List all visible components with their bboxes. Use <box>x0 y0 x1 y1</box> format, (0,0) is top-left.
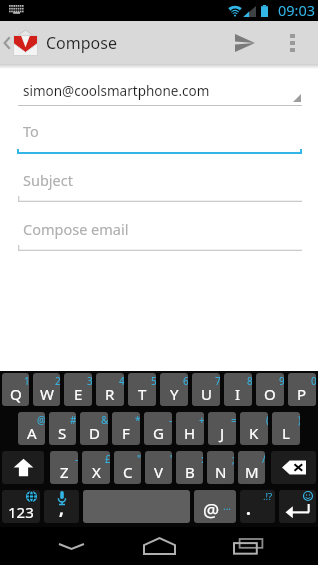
staticText: D <box>89 423 100 443</box>
staticText: L <box>282 423 290 443</box>
staticText: , <box>59 497 64 520</box>
staticText: M <box>245 462 259 482</box>
button[interactable]: ( <box>240 412 268 445</box>
staticText: 9 <box>279 374 284 388</box>
button[interactable]: - <box>144 412 172 445</box>
staticText: G <box>153 423 164 443</box>
staticText: " <box>137 452 141 466</box>
button[interactable]: £ <box>82 451 110 484</box>
button[interactable]: 8 <box>224 373 252 406</box>
staticText: Subject <box>23 170 73 190</box>
staticText: C <box>123 462 133 482</box>
button[interactable]: & <box>80 412 108 445</box>
button[interactable]: @ <box>194 490 236 523</box>
button[interactable]: 123 <box>2 490 40 523</box>
button[interactable]: Home <box>128 527 191 565</box>
button[interactable]: , <box>44 490 79 523</box>
staticText: @ <box>203 498 220 523</box>
staticText: K <box>249 423 259 443</box>
staticText: J <box>220 423 225 443</box>
staticText: = <box>231 413 236 427</box>
staticText: : <box>201 452 203 466</box>
staticText: Compose email <box>23 219 129 239</box>
button[interactable]: Navigate up <box>0 21 117 64</box>
staticText: O <box>264 384 276 404</box>
staticText: & <box>101 413 108 427</box>
staticText: E <box>74 384 83 404</box>
staticText: @ <box>37 413 45 427</box>
button[interactable]: + <box>176 412 204 445</box>
button[interactable]: Hide keyboard <box>40 527 103 565</box>
button[interactable]: : <box>176 451 203 484</box>
button[interactable]: 2 <box>33 373 60 406</box>
staticText: 09:03 <box>278 0 316 20</box>
button[interactable]: 1 <box>2 373 29 406</box>
button[interactable]: 0 <box>288 373 316 406</box>
button[interactable]: Enter <box>279 490 316 523</box>
staticText: ' <box>170 452 172 466</box>
button[interactable]: Recent apps <box>216 527 279 565</box>
staticText: R <box>105 384 115 404</box>
staticText: ... <box>223 499 232 513</box>
button[interactable]: - <box>50 451 78 484</box>
staticText: Q <box>10 384 22 404</box>
button[interactable]: ) <box>272 412 300 445</box>
staticText: 8 <box>247 374 252 388</box>
staticText: A <box>27 423 37 443</box>
staticText: - <box>169 413 172 427</box>
staticText: 2 <box>55 374 60 388</box>
button[interactable]: = <box>208 412 236 445</box>
staticText: ( <box>266 413 268 427</box>
staticText: H <box>184 423 196 443</box>
staticText: Z <box>60 462 69 482</box>
staticText: * <box>135 413 140 427</box>
staticText: .!? <box>263 490 273 503</box>
staticText: 123 <box>8 502 34 522</box>
button[interactable]: 6 <box>160 373 188 406</box>
staticText: simon@coolsmartphone.com <box>23 82 210 100</box>
staticText: U <box>201 384 212 404</box>
staticText: 7 <box>215 374 220 388</box>
staticText: - <box>75 452 78 466</box>
staticText: T <box>138 384 147 404</box>
staticText: ; <box>232 452 234 466</box>
button[interactable]: Send <box>229 21 277 64</box>
staticText: To <box>23 121 39 141</box>
staticText: S <box>58 423 67 443</box>
button[interactable]: / <box>238 451 265 484</box>
button[interactable]: Space <box>83 490 190 523</box>
staticText: 1 <box>24 374 29 388</box>
button[interactable]: # <box>49 412 76 445</box>
staticText: . <box>246 497 251 520</box>
staticText: # <box>70 413 76 427</box>
button[interactable]: ' <box>145 451 172 484</box>
staticText: X <box>92 462 101 482</box>
button[interactable]: 4 <box>96 373 124 406</box>
staticText: 6 <box>183 374 188 388</box>
staticText: I <box>235 384 241 404</box>
button[interactable]: ; <box>207 451 234 484</box>
staticText: W <box>40 384 54 404</box>
staticText: Compose <box>46 32 117 54</box>
staticText: P <box>297 384 307 404</box>
button[interactable]: " <box>114 451 141 484</box>
staticText: 4 <box>119 374 124 388</box>
button[interactable]: Backspace <box>271 451 316 484</box>
button[interactable]: 7 <box>192 373 220 406</box>
staticText: + <box>199 413 204 427</box>
button[interactable]: 3 <box>64 373 92 406</box>
staticText: V <box>154 462 164 482</box>
staticText: 5 <box>151 374 156 388</box>
button[interactable]: 9 <box>256 373 284 406</box>
staticText: ) <box>298 413 300 427</box>
staticText: 3 <box>87 374 92 388</box>
button[interactable]: Shift <box>2 451 44 484</box>
staticText: Y <box>170 384 179 404</box>
button[interactable]: .!? <box>240 490 275 523</box>
button[interactable]: More options <box>277 21 307 64</box>
button[interactable]: @ <box>18 412 45 445</box>
staticText: N <box>215 462 227 482</box>
staticText: F <box>122 423 130 443</box>
button[interactable]: 5 <box>128 373 156 406</box>
button[interactable]: * <box>112 412 140 445</box>
